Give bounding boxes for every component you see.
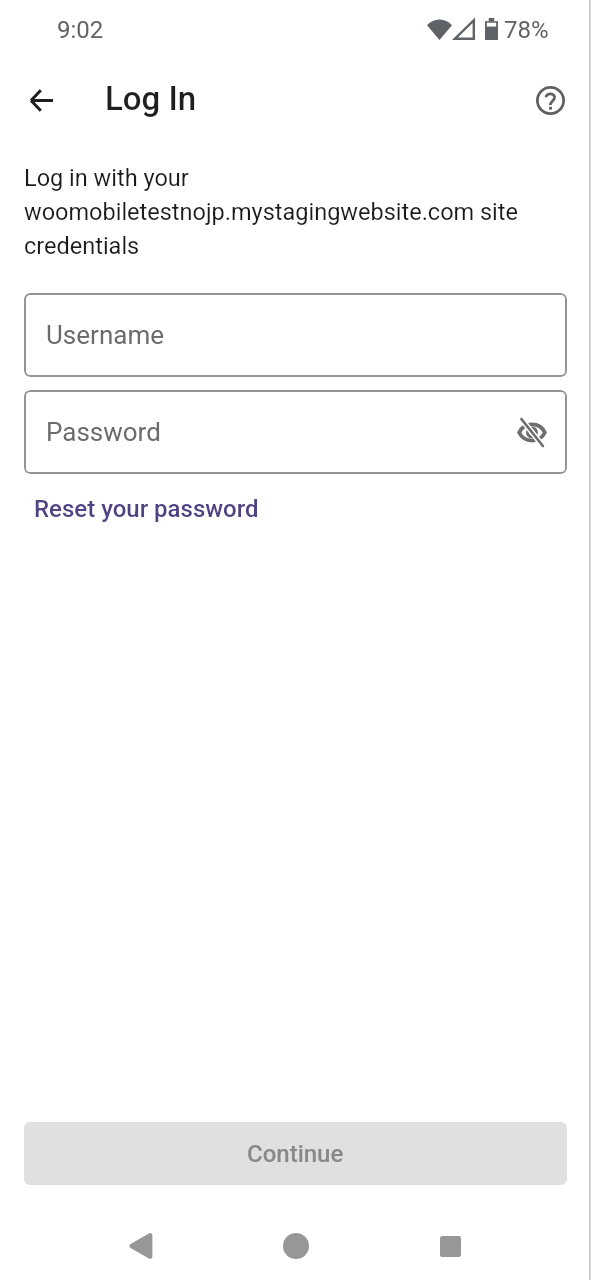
button[interactable]: Back (115, 1222, 163, 1270)
button[interactable]: Continue (24, 1122, 567, 1185)
button[interactable]: Recent apps (426, 1222, 474, 1270)
button[interactable]: Help (526, 76, 574, 124)
button[interactable]: Password (24, 390, 567, 474)
button[interactable]: Navigate up (17, 76, 65, 124)
staticText: Username (46, 320, 164, 350)
staticText: Continue (247, 1140, 344, 1168)
staticText: Password (46, 417, 161, 447)
staticText: 9:02 (57, 16, 104, 44)
button[interactable]: Show password (510, 410, 554, 454)
button[interactable]: Home (272, 1222, 320, 1270)
button[interactable]: Reset your password (24, 474, 273, 531)
button[interactable]: Username (24, 293, 567, 377)
staticText: 78% (504, 16, 549, 44)
staticText: Log In (105, 79, 197, 118)
staticText: Reset your password (34, 495, 259, 523)
staticText: Log in with your woomobiletestnojp.mysta… (24, 164, 567, 260)
